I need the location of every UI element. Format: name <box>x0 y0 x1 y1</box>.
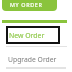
staticText: MY ORDER <box>10 1 43 8</box>
button[interactable]: MY ORDER <box>2 0 57 11</box>
staticText: New Order <box>9 31 45 40</box>
button[interactable]: New Order <box>6 26 60 44</box>
staticText: Upgrade Order <box>8 55 57 64</box>
button[interactable]: Upgrade Order <box>6 52 67 67</box>
